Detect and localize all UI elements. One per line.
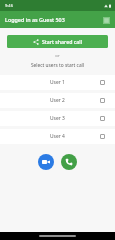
button[interactable]: Start shared call bbox=[7, 35, 108, 48]
staticText: Select users to start call bbox=[0, 62, 115, 69]
staticText: User 4 bbox=[50, 133, 65, 140]
button[interactable]: User 4 bbox=[0, 129, 115, 144]
staticText: User 3 bbox=[50, 115, 65, 122]
staticText: Logged in as Guest 503 bbox=[5, 16, 65, 23]
button[interactable]: User 1 bbox=[0, 75, 115, 90]
staticText: Start shared call bbox=[42, 38, 83, 45]
button[interactable]: Select User 1 bbox=[100, 80, 105, 85]
staticText: or bbox=[0, 53, 115, 59]
button[interactable]: Account bbox=[101, 15, 111, 25]
button[interactable]: Start audio call bbox=[61, 154, 77, 170]
staticText: User 1 bbox=[50, 79, 65, 86]
button[interactable]: Select User 4 bbox=[100, 134, 105, 139]
button[interactable]: Start video call bbox=[38, 154, 54, 170]
button[interactable]: User 2 bbox=[0, 93, 115, 108]
button[interactable]: Select User 3 bbox=[100, 116, 105, 121]
button[interactable]: Select User 2 bbox=[100, 98, 105, 103]
button[interactable]: User 3 bbox=[0, 111, 115, 126]
staticText: 9:46 bbox=[5, 3, 13, 8]
staticText: User 2 bbox=[50, 97, 65, 104]
